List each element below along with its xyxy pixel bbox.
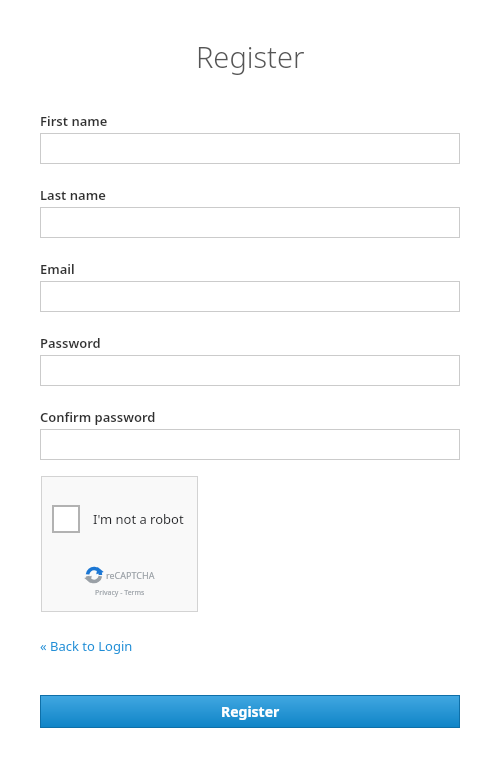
staticText: Confirm password <box>40 408 156 426</box>
staticText: I'm not a robot <box>93 510 184 528</box>
staticText: First name <box>40 112 108 130</box>
staticText: Register <box>221 702 280 721</box>
button[interactable]: First name <box>40 133 460 164</box>
staticText: « Back to Login <box>40 637 133 655</box>
button[interactable]: I'm not a robot checkbox <box>41 476 198 612</box>
button[interactable]: I'm not a robot checkbox <box>52 505 80 533</box>
button[interactable]: Password <box>40 355 460 386</box>
staticText: Privacy - Terms <box>95 588 145 598</box>
button[interactable]: Register <box>40 695 460 728</box>
staticText: Password <box>40 334 101 352</box>
button[interactable]: « Back to Login <box>40 637 133 655</box>
button[interactable]: Email <box>40 281 460 312</box>
staticText: Register <box>196 37 305 76</box>
staticText: reCAPTCHA <box>106 569 155 581</box>
staticText: Last name <box>40 186 106 204</box>
button[interactable]: Confirm password <box>40 429 460 460</box>
button[interactable]: Last name <box>40 207 460 238</box>
staticText: Email <box>40 260 75 278</box>
